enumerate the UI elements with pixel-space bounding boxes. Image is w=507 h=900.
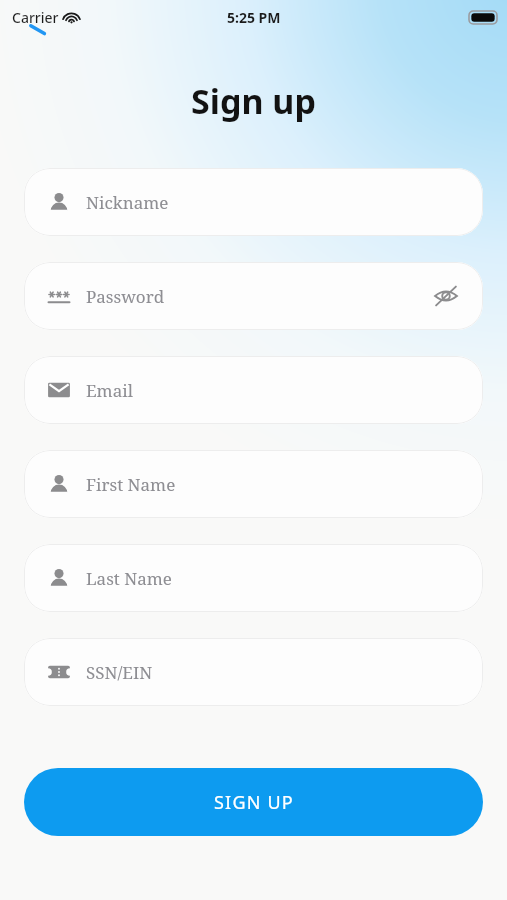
staticText: First Name (86, 473, 176, 496)
staticText: SSN/EIN (86, 661, 153, 684)
button[interactable]: Email (24, 356, 483, 424)
button[interactable]: SIGN UP (24, 768, 483, 836)
staticText: Email (86, 379, 133, 402)
button[interactable]: Password (24, 262, 483, 330)
button[interactable]: Show password (431, 281, 461, 311)
staticText: Password (86, 285, 165, 308)
button[interactable]: First Name (24, 450, 483, 518)
staticText: Carrier (12, 8, 59, 27)
staticText: Last Name (86, 567, 172, 590)
button[interactable]: SSN/EIN (24, 638, 483, 706)
button[interactable]: Nickname (24, 168, 483, 236)
staticText: Nickname (86, 191, 169, 214)
staticText: 5:25 PM (227, 8, 281, 27)
staticText: Sign up (0, 78, 507, 124)
button[interactable]: Last Name (24, 544, 483, 612)
staticText: SIGN UP (214, 790, 294, 815)
